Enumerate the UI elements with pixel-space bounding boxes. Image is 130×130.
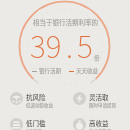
button[interactable]: 低门槛 [10, 118, 65, 130]
staticText: 高收益 [89, 118, 109, 127]
button[interactable]: 灵活取 [73, 92, 130, 109]
staticText: . [66, 23, 73, 66]
button[interactable]: 高收益 [73, 118, 130, 130]
staticText: 灵活取 [89, 92, 109, 101]
staticText: 随时申请提现 [89, 102, 116, 109]
staticText: 低门槛 [26, 118, 46, 127]
staticText: 倍 [94, 54, 100, 62]
staticText: 抗风险 [26, 92, 46, 101]
staticText: 39 [30, 23, 62, 66]
staticText: 1元起投 [26, 128, 42, 130]
staticText: 收益率稳定 [89, 128, 112, 130]
staticText: 5 [77, 23, 93, 66]
staticText: 银行活期 [39, 67, 62, 75]
staticText: 天天收益 [76, 67, 99, 75]
staticText: 相当于银行活期利率的 [33, 17, 98, 26]
staticText: 低波动稳收益 [26, 102, 53, 109]
button[interactable]: 抗风险 [10, 92, 65, 109]
